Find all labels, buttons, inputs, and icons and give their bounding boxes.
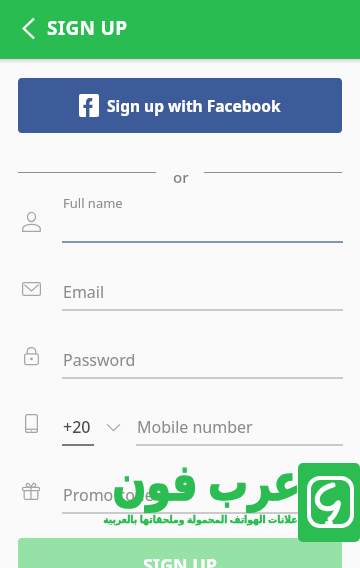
staticText: Email xyxy=(63,281,105,303)
button[interactable]: Sign up with Facebook xyxy=(18,78,342,133)
staticText: Sign up with Facebook xyxy=(107,95,281,116)
button[interactable]: Back xyxy=(14,16,42,44)
staticText: SIGN UP xyxy=(47,15,128,41)
button[interactable]: Promo code field xyxy=(0,460,360,514)
button[interactable]: SIGN UP xyxy=(18,538,342,568)
staticText: Promo code xyxy=(63,484,154,506)
button[interactable]: Password field xyxy=(0,324,360,378)
staticText: Full name xyxy=(63,194,123,212)
staticText: عرب فون xyxy=(112,447,301,515)
staticText: Mobile number xyxy=(137,416,253,438)
staticText: or xyxy=(173,167,189,187)
button[interactable]: Email field xyxy=(0,256,360,310)
staticText: اعلانات الهواتف المحمولة وملحقاتها بالعر… xyxy=(103,512,301,526)
staticText: SIGN UP xyxy=(143,553,218,568)
staticText: Password xyxy=(63,349,136,371)
button[interactable]: Full name field xyxy=(0,188,360,242)
staticText: +20 xyxy=(63,416,91,438)
button[interactable]: Mobile number field xyxy=(0,392,360,446)
